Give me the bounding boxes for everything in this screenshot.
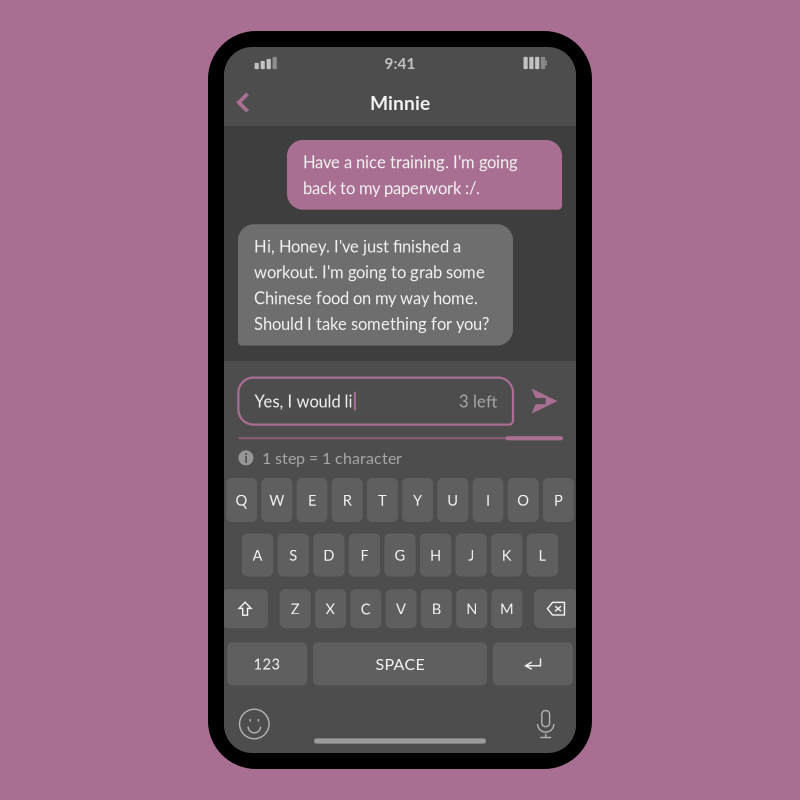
staticText: Hi, Honey. I've just finished a workout.…	[254, 236, 489, 334]
staticText: L	[538, 546, 546, 564]
button[interactable]: X	[315, 589, 346, 628]
staticText: Minnie	[370, 91, 430, 114]
button[interactable]: Dictate	[524, 702, 568, 746]
button[interactable]: L	[527, 533, 558, 576]
button[interactable]: V	[386, 589, 416, 628]
staticText: 3 left	[459, 391, 497, 411]
button[interactable]: G	[384, 533, 416, 576]
staticText: i	[244, 450, 247, 466]
staticText: D	[323, 546, 334, 564]
button[interactable]: O	[508, 478, 539, 522]
button[interactable]: W	[261, 478, 292, 522]
button[interactable]: Z	[280, 589, 311, 628]
staticText: Q	[236, 491, 248, 509]
button[interactable]: Send	[513, 378, 563, 425]
button[interactable]: 123	[227, 642, 307, 685]
staticText: Have a nice training. I'm going back to …	[303, 152, 518, 198]
button[interactable]: Q	[226, 478, 257, 522]
button[interactable]: K	[491, 533, 522, 576]
button[interactable]: Return	[493, 642, 573, 685]
button[interactable]: F	[349, 533, 380, 576]
button[interactable]: Y	[402, 478, 433, 522]
button[interactable]: Emoji keyboard	[232, 702, 276, 746]
staticText: T	[378, 491, 387, 509]
staticText: K	[502, 546, 512, 564]
staticText: N	[466, 600, 477, 617]
button[interactable]: M	[491, 589, 522, 628]
button[interactable]: SPACE	[313, 642, 487, 685]
button[interactable]: T	[367, 478, 398, 522]
staticText: H	[430, 546, 441, 564]
button[interactable]: Shift	[222, 589, 268, 628]
button[interactable]: N	[456, 589, 487, 628]
staticText: 1 step = 1 character	[262, 448, 402, 467]
staticText: S	[289, 546, 297, 564]
staticText: M	[500, 600, 514, 617]
button[interactable]: A	[242, 533, 273, 576]
button[interactable]: J	[456, 533, 487, 576]
staticText: R	[343, 491, 352, 509]
staticText: J	[468, 546, 474, 564]
button[interactable]: Back	[237, 79, 281, 126]
staticText: C	[361, 600, 371, 617]
staticText: X	[325, 600, 335, 617]
button[interactable]: C	[350, 589, 381, 628]
staticText: U	[447, 491, 458, 509]
staticText: F	[360, 546, 368, 564]
staticText: W	[269, 491, 284, 509]
staticText: Y	[413, 491, 422, 509]
button[interactable]: E	[297, 478, 327, 522]
staticText: E	[308, 491, 316, 509]
staticText: P	[554, 491, 563, 509]
button[interactable]: U	[437, 478, 468, 522]
staticText: Z	[291, 600, 300, 617]
button[interactable]: D	[313, 533, 344, 576]
button[interactable]: B	[421, 589, 452, 628]
staticText: SPACE	[375, 654, 424, 673]
staticText: A	[253, 546, 263, 564]
staticText: B	[432, 600, 441, 617]
button[interactable]: H	[420, 533, 451, 576]
staticText: I	[486, 491, 490, 509]
button[interactable]: R	[332, 478, 363, 522]
button[interactable]: P	[543, 478, 574, 522]
staticText: Yes, I would li	[254, 391, 352, 411]
staticText: G	[394, 546, 405, 564]
button[interactable]: Delete	[534, 589, 578, 628]
staticText: 123	[253, 655, 280, 673]
button[interactable]: S	[278, 533, 309, 576]
button[interactable]: I	[473, 478, 503, 522]
staticText: V	[396, 600, 406, 617]
staticText: 9:41	[385, 54, 416, 72]
staticText: O	[517, 491, 529, 509]
